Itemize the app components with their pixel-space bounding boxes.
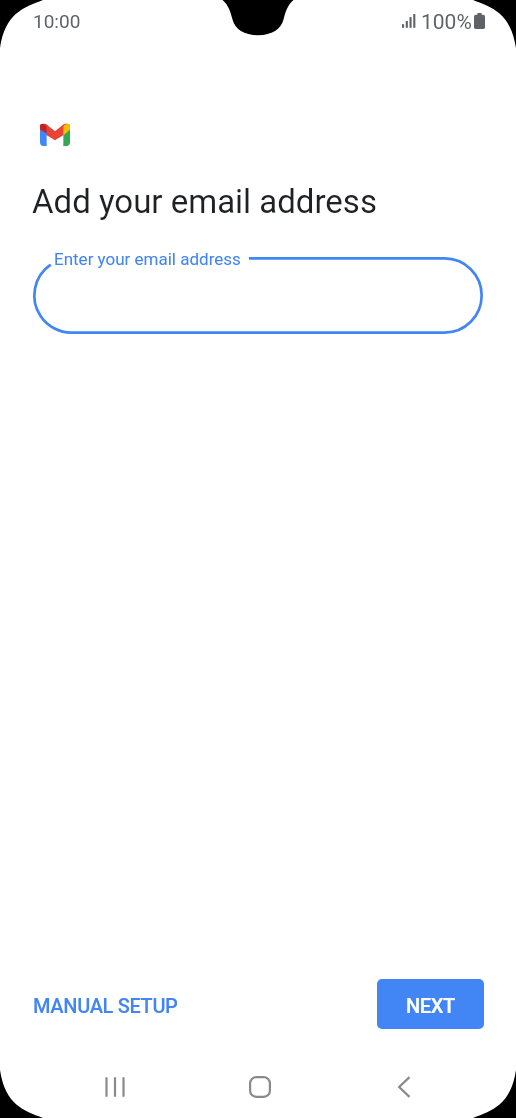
staticText: Add your email address (32, 182, 377, 221)
button[interactable]: NEXT (377, 979, 484, 1029)
button[interactable]: Home (230, 1066, 290, 1108)
staticText: 100% (421, 10, 472, 35)
button[interactable]: MANUAL SETUP (21, 986, 190, 1025)
staticText: 10:00 (33, 10, 81, 32)
staticText: MANUAL SETUP (33, 994, 178, 1017)
button[interactable]: Back (374, 1066, 434, 1108)
button[interactable]: Recent apps (85, 1066, 145, 1108)
staticText: Enter your email address (54, 249, 241, 269)
staticText: NEXT (406, 994, 455, 1017)
button[interactable]: Enter your email address (33, 257, 483, 334)
